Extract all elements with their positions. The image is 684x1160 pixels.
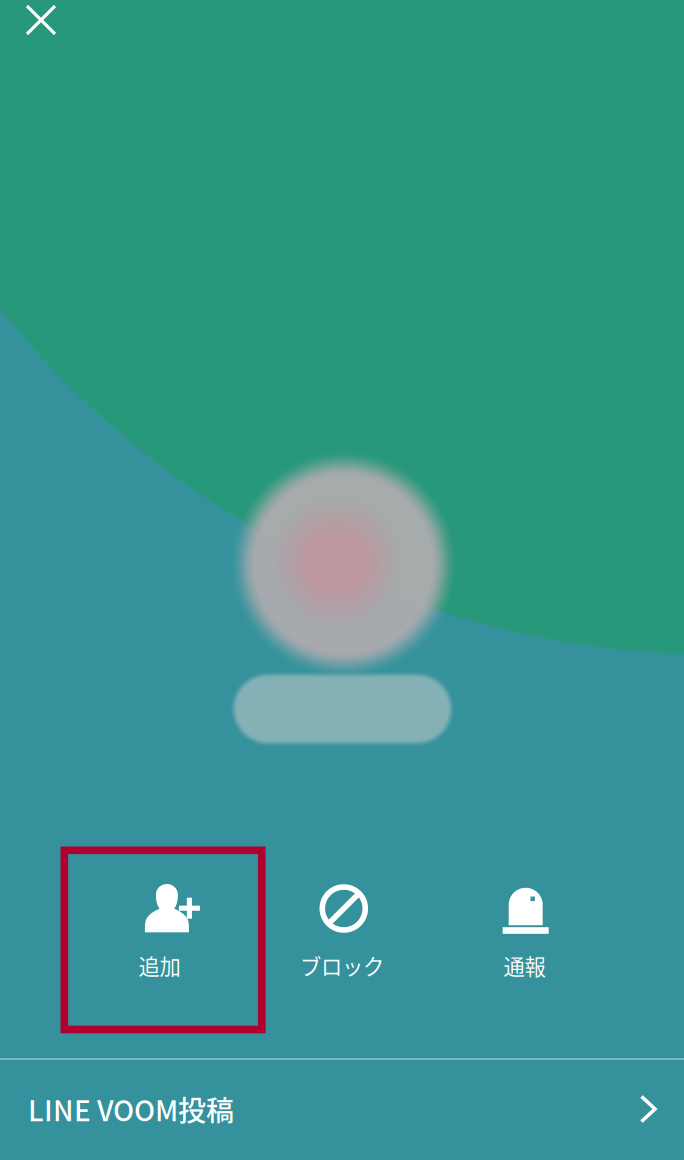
- staticText: 追加: [138, 950, 180, 981]
- button[interactable]: LINE VOOM投稿: [0, 1058, 684, 1160]
- button[interactable]: ブロック: [251, 846, 433, 1032]
- button[interactable]: 追加: [68, 846, 251, 1032]
- button[interactable]: Close: [11, 0, 71, 50]
- staticText: LINE VOOM投稿: [28, 1089, 234, 1129]
- staticText: 通報: [504, 950, 546, 981]
- button[interactable]: 通報: [433, 846, 616, 1032]
- staticText: ブロック: [300, 950, 384, 981]
